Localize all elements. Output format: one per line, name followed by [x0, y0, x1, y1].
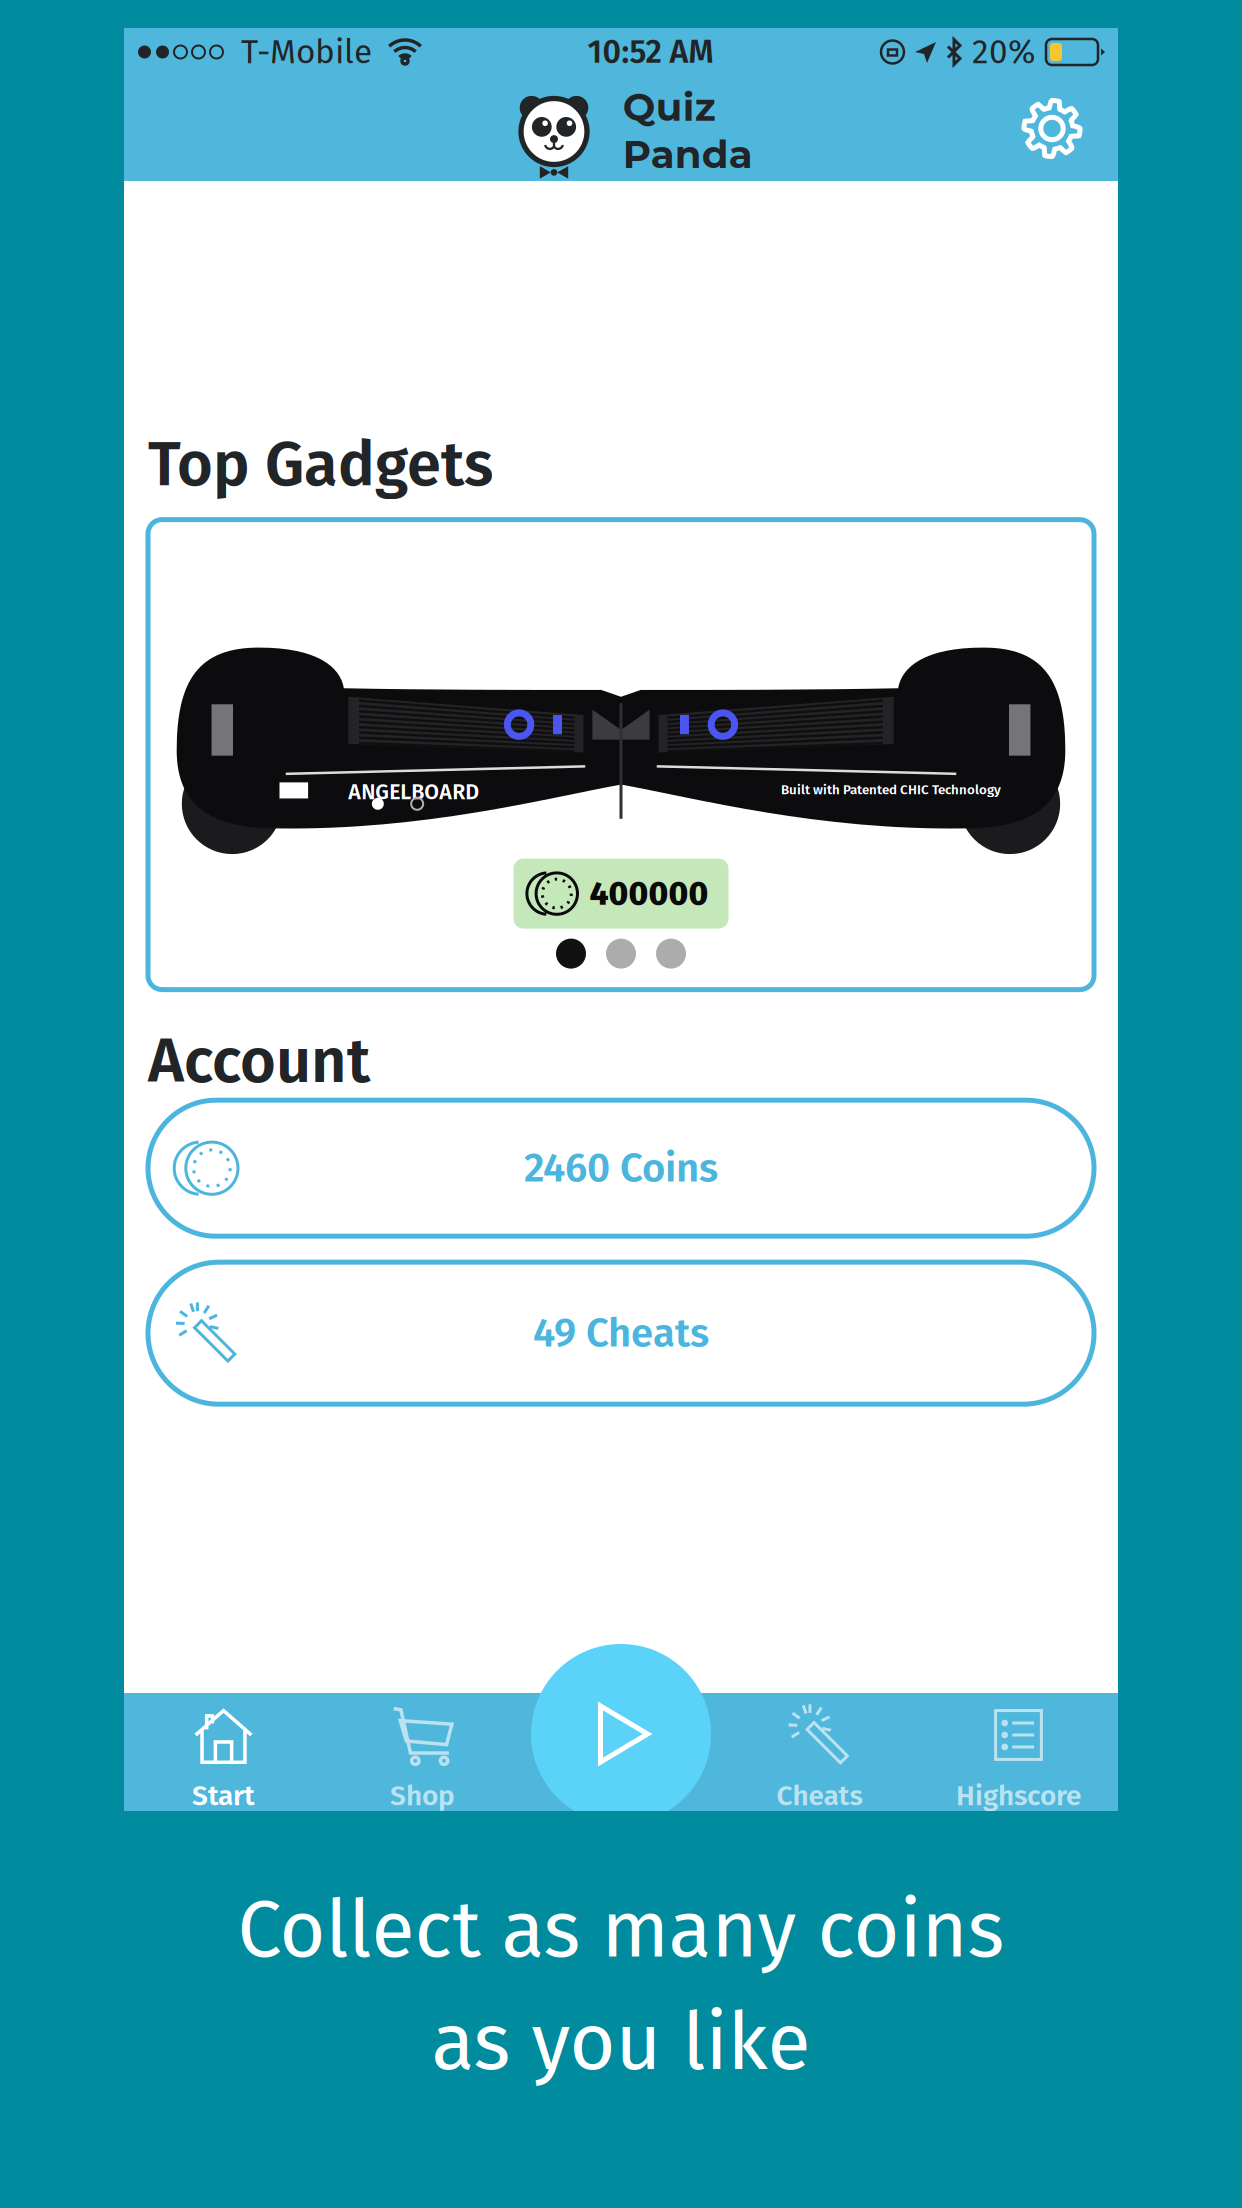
staticText: 400000: [589, 874, 708, 914]
button[interactable]: Shop: [323, 1693, 522, 1811]
staticText: Shop: [390, 1779, 455, 1813]
staticText: Top Gadgets: [148, 428, 493, 502]
staticText: Quiz: [623, 83, 716, 130]
staticText: Account: [148, 1025, 370, 1098]
staticText: Built with Patented CHIC Technology: [781, 782, 1001, 798]
staticText: Collect as many coins: [237, 1883, 1004, 1977]
button[interactable]: 49 Cheats: [124, 1262, 1118, 1404]
staticText: as you like: [431, 1995, 810, 2090]
staticText: ANGELBOARD: [348, 779, 479, 805]
staticText: 10:52 AM: [587, 33, 713, 71]
button[interactable]: Highscore: [919, 1693, 1118, 1811]
staticText: 49 Cheats: [533, 1309, 709, 1357]
button[interactable]: Play: [531, 1644, 711, 1824]
staticText: 2460 Coins: [524, 1144, 718, 1192]
staticText: Cheats: [776, 1779, 862, 1813]
button[interactable]: Start: [124, 1693, 323, 1811]
button[interactable]: Cheats: [720, 1693, 919, 1811]
staticText: Highscore: [956, 1779, 1081, 1813]
button[interactable]: Settings: [1024, 100, 1118, 156]
staticText: Start: [192, 1779, 255, 1813]
button[interactable]: 2460 Coins: [124, 1100, 1118, 1236]
staticText: Panda: [623, 130, 753, 178]
staticText: 20%: [972, 32, 1036, 72]
staticText: T-Mobile: [223, 32, 390, 72]
